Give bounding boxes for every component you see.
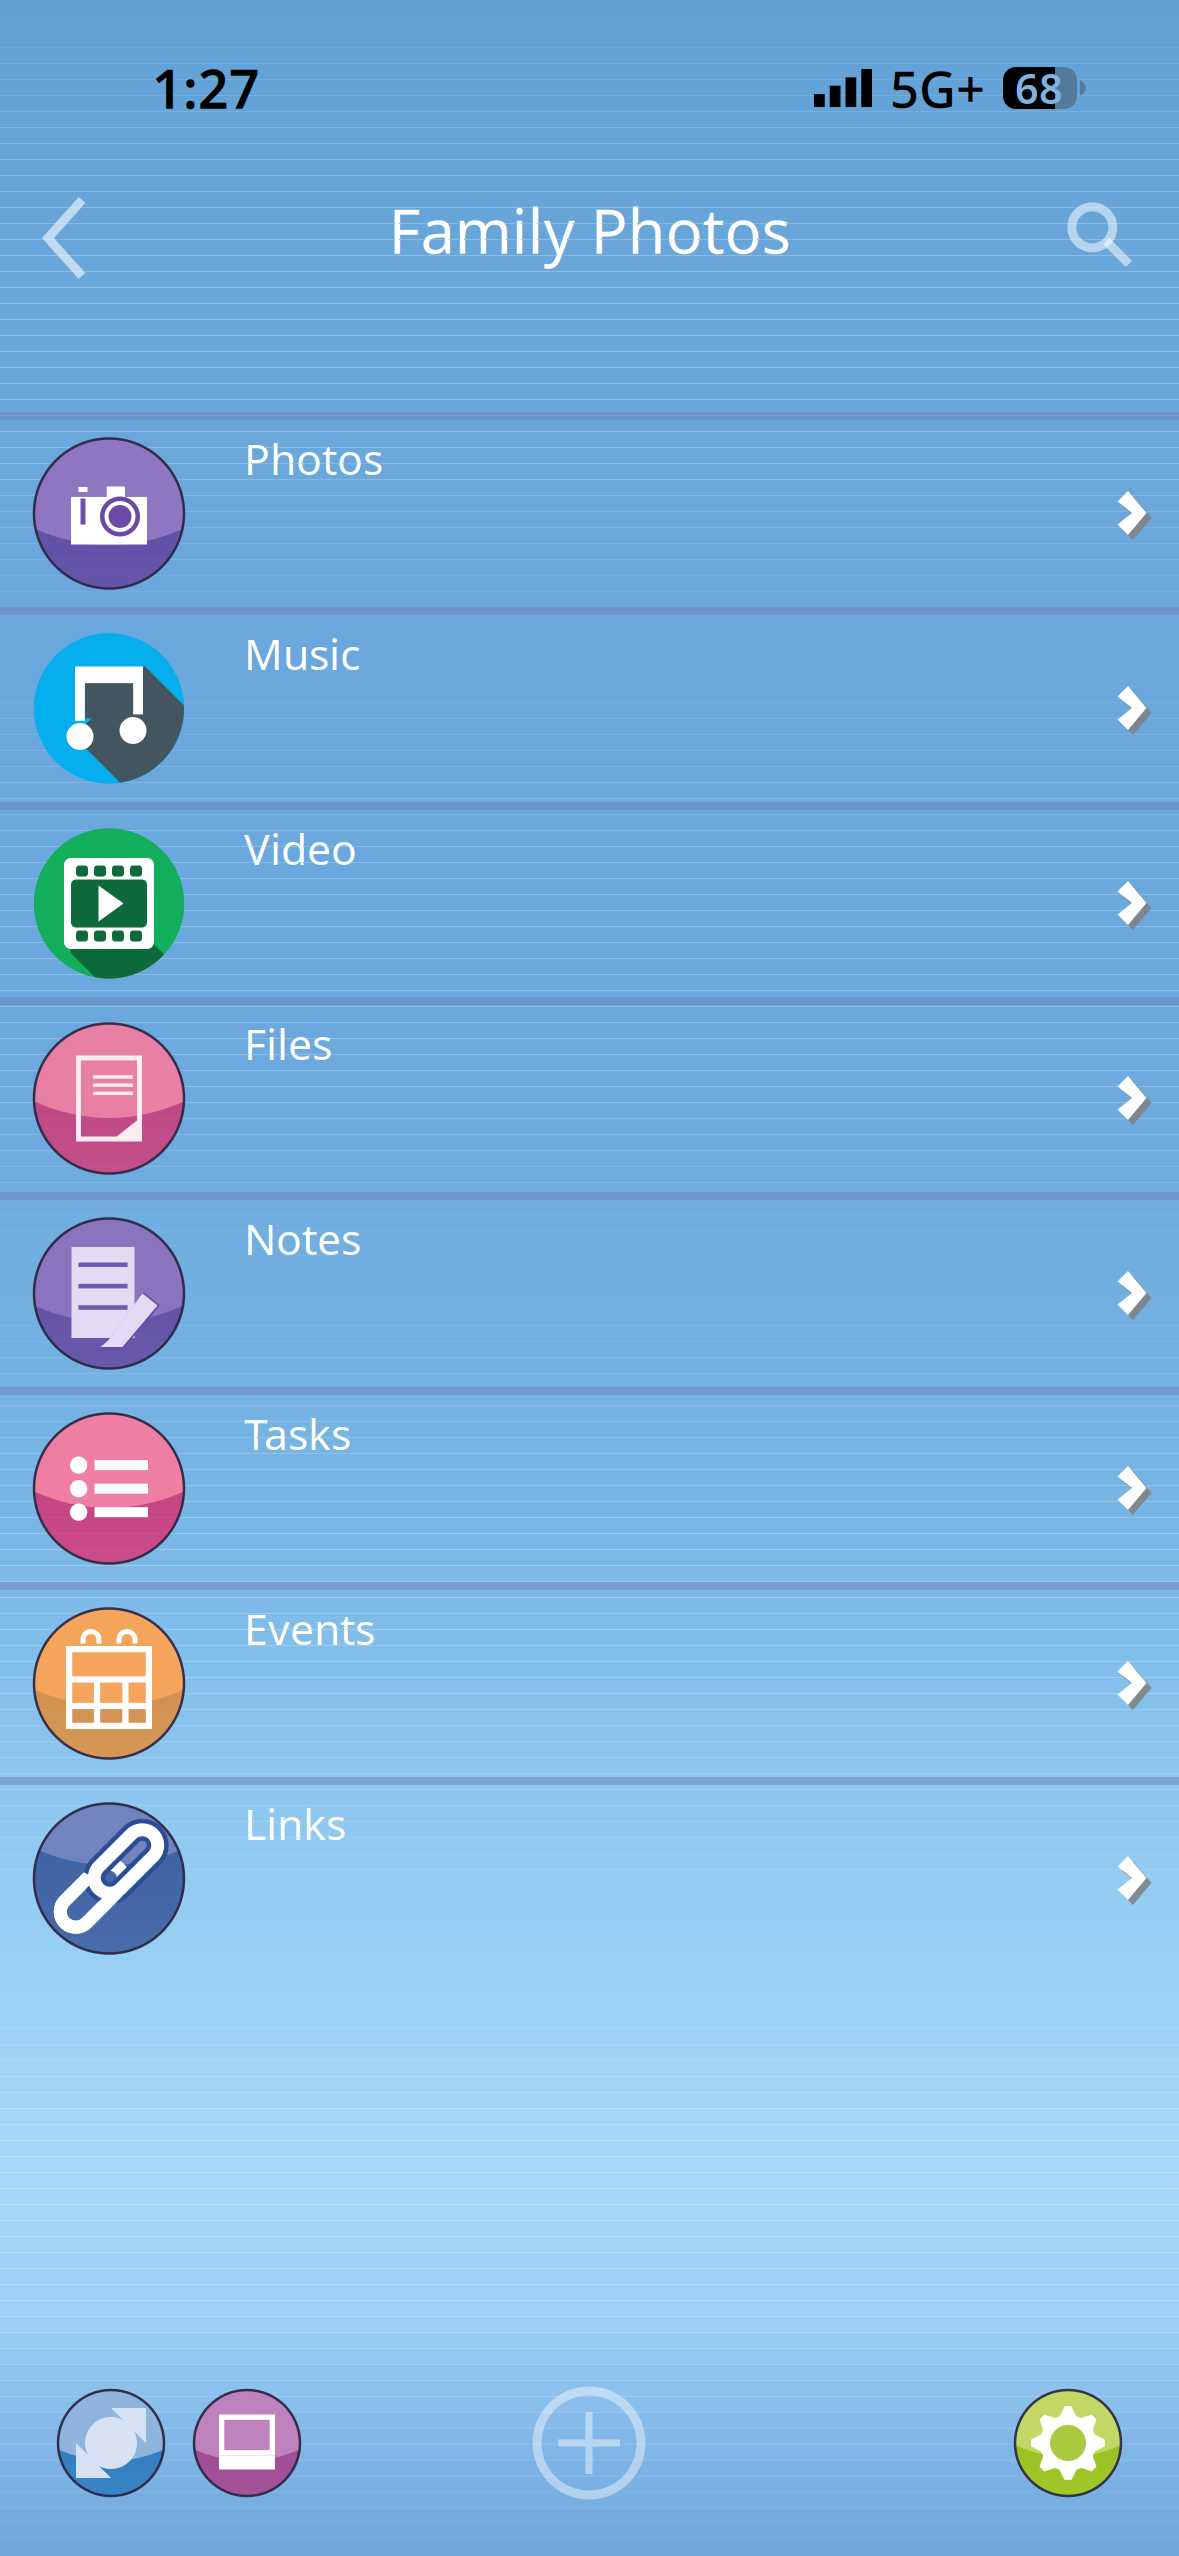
staticText: Files	[244, 1015, 332, 1072]
button[interactable]: Files	[0, 1005, 1179, 1192]
staticText: Events	[244, 1600, 375, 1657]
button[interactable]: Settings	[1015, 2374, 1121, 2512]
button[interactable]: Search	[1029, 176, 1179, 284]
button[interactable]: Links	[0, 1785, 1179, 1972]
button[interactable]: Back	[0, 176, 130, 284]
staticText: 5G+	[890, 54, 985, 122]
button[interactable]: Tasks	[0, 1395, 1179, 1582]
button[interactable]: Add	[527, 2381, 651, 2505]
button[interactable]: Music	[0, 615, 1179, 802]
staticText: Links	[244, 1795, 346, 1852]
staticText: 68	[1015, 61, 1063, 115]
staticText: Music	[244, 625, 360, 682]
staticText: Family Photos	[388, 189, 790, 271]
button[interactable]: Notes	[0, 1200, 1179, 1387]
staticText: Video	[244, 820, 357, 877]
button[interactable]: Video	[0, 810, 1179, 997]
button[interactable]: Albums	[194, 2374, 300, 2512]
staticText: Tasks	[244, 1405, 351, 1462]
staticText: 1:27	[152, 53, 260, 123]
button[interactable]: Camera	[58, 2374, 164, 2512]
staticText: Notes	[244, 1210, 361, 1267]
button[interactable]: Events	[0, 1590, 1179, 1777]
staticText: Photos	[244, 430, 383, 487]
button[interactable]: Photos	[0, 420, 1179, 607]
